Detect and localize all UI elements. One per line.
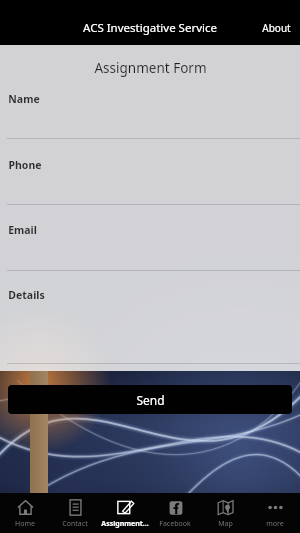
button[interactable]: Assignment...	[100, 493, 150, 533]
staticText: Home	[15, 519, 35, 529]
staticText: About	[262, 21, 291, 35]
staticText: ACS Investigative Service	[83, 20, 217, 36]
staticText: Assignment Form	[94, 59, 207, 77]
staticText: Facebook	[159, 519, 191, 529]
button[interactable]: About	[253, 15, 300, 41]
button[interactable]: Send	[8, 385, 292, 414]
button[interactable]: Facebook	[150, 493, 200, 533]
button[interactable]: Map	[200, 493, 250, 533]
staticText: more	[266, 519, 284, 529]
staticText: Details	[8, 288, 45, 302]
button[interactable]: Home	[0, 493, 50, 533]
staticText: Map	[218, 519, 233, 529]
staticText: Send	[136, 392, 165, 408]
button[interactable]: more	[250, 493, 300, 533]
staticText: Name	[8, 92, 40, 106]
staticText: Phone	[8, 158, 42, 172]
staticText: Assignment...	[101, 519, 149, 529]
button[interactable]: Contact	[50, 493, 100, 533]
staticText: Email	[8, 223, 37, 237]
staticText: Contact	[62, 519, 88, 529]
